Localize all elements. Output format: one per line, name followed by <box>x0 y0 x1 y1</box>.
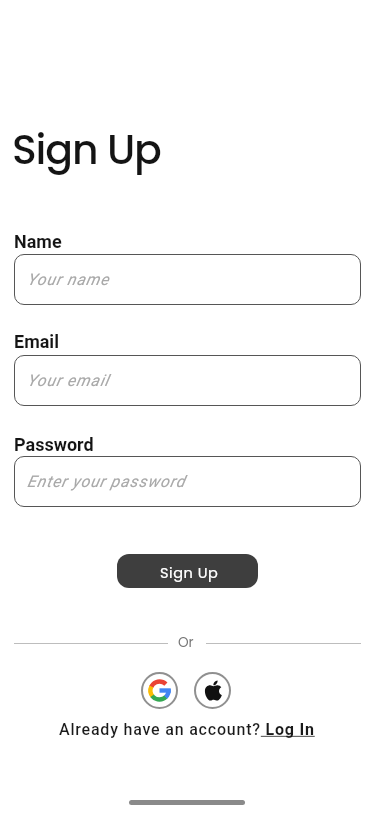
staticText: Name <box>14 231 62 252</box>
staticText: Your email <box>27 371 110 390</box>
staticText: Sign Up <box>12 121 161 178</box>
button[interactable] <box>194 672 231 709</box>
staticText: Sign Up <box>160 563 219 583</box>
button[interactable] <box>141 672 178 709</box>
button[interactable]: Sign Up <box>117 554 258 588</box>
staticText: Enter your password <box>27 472 186 491</box>
button[interactable]: Your name <box>14 254 361 305</box>
staticText: Your name <box>27 270 110 289</box>
button[interactable]: Already have an account? Log In <box>59 720 315 739</box>
staticText: Or <box>178 633 194 652</box>
button[interactable]: Your email <box>14 355 361 406</box>
button[interactable]: Enter your password <box>14 456 361 507</box>
staticText: Password <box>14 434 94 455</box>
staticText: Email <box>14 331 59 352</box>
